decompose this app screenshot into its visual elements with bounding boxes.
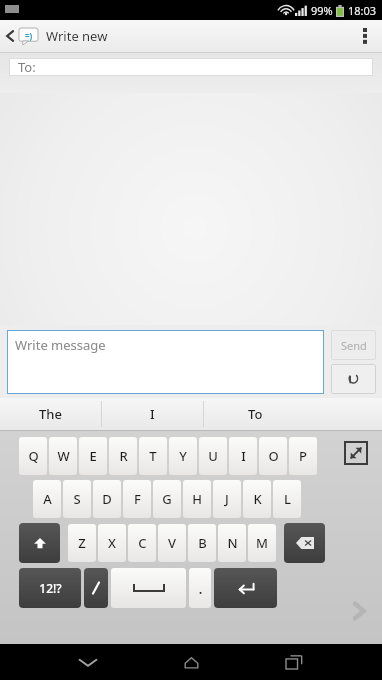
button[interactable]: I [102,398,203,430]
button[interactable]: T [139,437,167,475]
staticText: Q [28,447,39,465]
button[interactable]: N [218,524,246,562]
other: Back [3,28,17,44]
staticText: Z [78,534,86,552]
staticText: M [256,534,268,552]
button[interactable]: Space [111,568,186,608]
button[interactable]: F [123,480,151,518]
button[interactable]: P [289,437,317,475]
staticText: E [89,447,97,465]
button[interactable]: I [229,437,257,475]
button[interactable]: . [189,568,211,608]
button[interactable]: C [128,524,156,562]
button[interactable]: Resize keyboard [344,441,368,465]
button[interactable]: Write message [7,330,324,394]
button[interactable]: More options [348,20,382,52]
button[interactable]: X [98,524,126,562]
staticText: D [102,490,112,508]
staticText: Write new [46,27,108,45]
staticText: O [268,447,279,465]
button[interactable]: U [199,437,227,475]
button[interactable]: Enter [214,568,277,608]
button[interactable]: Slash [84,568,108,608]
staticText: To [248,405,263,423]
button[interactable]: Back [3,27,108,45]
button[interactable]: J [213,480,241,518]
staticText: K [253,490,262,508]
button[interactable]: To [204,398,382,430]
button[interactable]: Shift [19,523,60,563]
staticText: C [138,534,147,552]
button[interactable]: W [49,437,77,475]
button[interactable]: K [243,480,271,518]
button[interactable]: V [158,524,186,562]
staticText: Send [341,338,367,353]
staticText: To: [18,58,36,76]
button[interactable]: A [33,480,61,518]
button[interactable]: G [153,480,181,518]
staticText: S [73,490,81,508]
staticText: W [57,447,70,465]
staticText: . [198,578,203,598]
button[interactable]: Attach [331,364,376,394]
staticText: R [119,447,128,465]
button[interactable]: Recents [274,644,314,680]
button[interactable]: H [183,480,211,518]
button[interactable]: E [79,437,107,475]
staticText: 18:03 [348,3,377,18]
staticText: Write message [15,336,106,354]
staticText: V [168,534,176,552]
button[interactable]: The [0,398,101,430]
button[interactable]: S [63,480,91,518]
staticText: L [284,490,291,508]
staticText: I [150,405,155,423]
staticText: J [225,490,229,508]
staticText: Y [179,447,187,465]
button[interactable]: Symbols [19,568,81,608]
button[interactable]: Y [169,437,197,475]
staticText: X [108,534,116,552]
button[interactable]: To: [9,58,373,76]
staticText: N [227,534,238,552]
staticText: G [162,490,172,508]
staticText: P [299,447,307,465]
staticText: =) [25,30,33,41]
button[interactable]: Home [161,644,221,680]
button[interactable]: M [248,524,276,562]
button[interactable]: Backspace [284,523,325,563]
staticText: The [39,405,62,423]
button[interactable]: Q [19,437,47,475]
button[interactable]: Hide keyboard [68,644,108,680]
button[interactable]: D [93,480,121,518]
button[interactable]: Next [346,598,372,624]
button[interactable]: B [188,524,216,562]
staticText: B [198,534,207,552]
staticText: H [192,490,202,508]
staticText: 99% [311,3,333,18]
button[interactable]: O [259,437,287,475]
staticText: 12!? [39,580,62,596]
button[interactable]: R [109,437,137,475]
staticText: F [134,490,141,508]
button[interactable]: Send [331,330,376,360]
staticText: A [43,490,52,508]
button[interactable]: L [273,480,301,518]
staticText: T [149,447,157,465]
button[interactable]: Z [68,524,96,562]
staticText: I [241,447,246,465]
staticText: U [208,447,218,465]
